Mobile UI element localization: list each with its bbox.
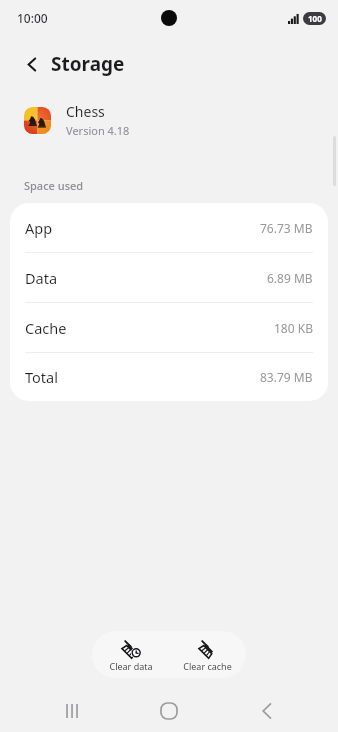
staticText: 6.89 MB bbox=[267, 270, 313, 286]
staticText: Data bbox=[25, 268, 58, 288]
button[interactable]: Home bbox=[143, 690, 195, 732]
staticText: Version 4.18 bbox=[66, 123, 130, 138]
staticText: Space used bbox=[24, 178, 84, 193]
staticText: Clear cache bbox=[183, 660, 232, 672]
staticText: Cache bbox=[25, 318, 67, 338]
staticText: Storage bbox=[51, 51, 125, 77]
staticText: Chess bbox=[66, 102, 105, 121]
staticText: Total bbox=[25, 367, 58, 387]
staticText: App bbox=[25, 218, 53, 238]
staticText: 83.79 MB bbox=[260, 369, 313, 385]
button[interactable]: App bbox=[10, 203, 328, 253]
button[interactable]: Back bbox=[14, 46, 50, 82]
button[interactable]: Total bbox=[10, 353, 328, 401]
button[interactable]: Data bbox=[10, 253, 328, 303]
staticText: Clear data bbox=[109, 660, 153, 672]
button[interactable]: Recents bbox=[46, 690, 98, 732]
button[interactable]: Cache bbox=[10, 303, 328, 353]
staticText: 100 bbox=[308, 13, 322, 24]
button[interactable]: Clear cache bbox=[169, 631, 246, 678]
staticText: 76.73 MB bbox=[260, 220, 313, 236]
button[interactable]: Back bbox=[241, 690, 293, 732]
staticText: 10:00 bbox=[17, 10, 48, 26]
staticText: 180 KB bbox=[274, 320, 313, 336]
button[interactable]: Clear data bbox=[92, 631, 169, 678]
